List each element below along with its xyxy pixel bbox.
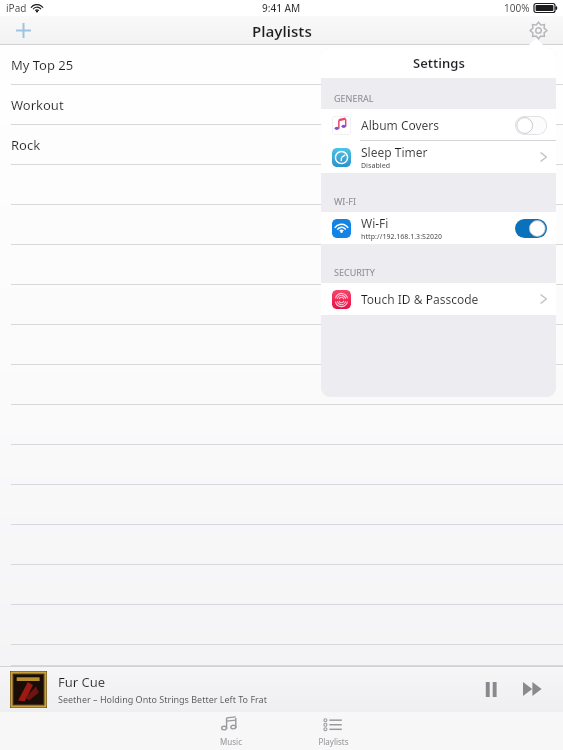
button[interactable] <box>0 405 563 445</box>
staticText: Wi-Fi <box>361 215 389 231</box>
staticText: 100% <box>504 1 530 15</box>
button[interactable]: Workout <box>0 85 563 125</box>
staticText: http://192.168.1.3:52020 <box>361 232 443 242</box>
button[interactable]: Add playlist <box>8 16 38 45</box>
button[interactable]: Album Covers <box>321 109 556 141</box>
staticText: Touch ID & Passcode <box>361 291 479 307</box>
staticText: Album Covers <box>361 117 440 133</box>
staticText: Disabled <box>361 161 391 171</box>
button[interactable]: Settings <box>523 16 553 45</box>
staticText: iPad <box>6 1 27 15</box>
button[interactable]: Pause <box>471 669 511 709</box>
button[interactable]: On <box>515 219 547 238</box>
button[interactable]: Wi-Fi <box>321 212 556 244</box>
button[interactable]: Touch ID & Passcode <box>321 283 556 315</box>
button[interactable]: Sleep Timer <box>321 141 556 173</box>
staticText: Playlists <box>252 21 312 41</box>
button[interactable] <box>0 565 563 605</box>
staticText: 9:41 AM <box>262 1 301 15</box>
staticText: Fur Cue <box>58 673 106 691</box>
staticText: GENERAL <box>334 92 374 104</box>
staticText: WI-FI <box>334 195 357 207</box>
button[interactable] <box>0 245 563 285</box>
button[interactable] <box>0 285 563 325</box>
staticText: Rock <box>11 136 41 154</box>
staticText: Music <box>220 736 242 747</box>
button[interactable] <box>0 645 563 666</box>
button[interactable]: Music <box>200 712 262 750</box>
staticText: My Top 25 <box>11 56 74 74</box>
staticText: Seether – Holding Onto Strings Better Le… <box>58 693 267 705</box>
staticText: Sleep Timer <box>361 144 428 160</box>
button[interactable]: My Top 25 <box>0 45 563 85</box>
button[interactable]: Next track <box>513 669 553 709</box>
button[interactable]: Rock <box>0 125 563 165</box>
button[interactable] <box>0 205 563 245</box>
button[interactable] <box>0 445 563 485</box>
button[interactable] <box>0 605 563 645</box>
button[interactable] <box>0 325 563 365</box>
staticText: Workout <box>11 96 64 114</box>
button[interactable]: Playlists <box>302 712 364 750</box>
button[interactable] <box>0 485 563 525</box>
button[interactable] <box>0 525 563 565</box>
staticText: Settings <box>413 54 465 72</box>
button[interactable]: Now playing artwork <box>10 671 47 708</box>
staticText: SECURITY <box>334 266 375 278</box>
button[interactable] <box>0 165 563 205</box>
button[interactable] <box>0 365 563 405</box>
button[interactable]: Off <box>515 116 547 135</box>
staticText: Playlists <box>318 736 349 747</box>
